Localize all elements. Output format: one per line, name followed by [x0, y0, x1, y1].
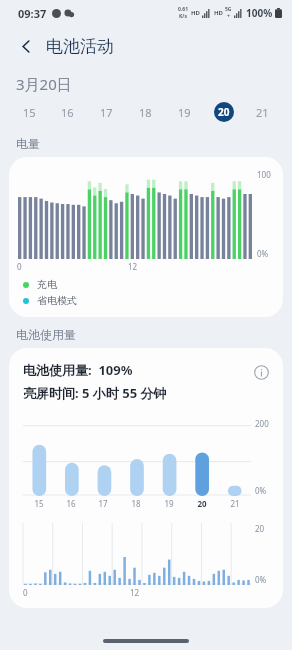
staticText: 17 [100, 105, 113, 120]
staticText: 200 [255, 418, 269, 429]
button[interactable]: 18 [126, 96, 165, 128]
staticText: 20 [218, 105, 230, 119]
staticText: 20 [197, 498, 207, 509]
staticText: 19 [164, 498, 174, 509]
staticText: 电池使用量: 109% [23, 361, 133, 379]
staticText: 0.61 [178, 6, 188, 13]
staticText: 18 [131, 498, 141, 509]
staticText: 3月20日 [16, 74, 72, 94]
staticText: HD [214, 9, 223, 17]
staticText: 0% [257, 248, 269, 259]
staticText: 电池活动 [46, 36, 114, 57]
staticText: 100% [246, 6, 273, 20]
button[interactable]: 19 [165, 96, 204, 128]
button[interactable]: Back [12, 32, 40, 60]
button[interactable]: 20 [204, 96, 243, 128]
staticText: 0% [255, 485, 267, 496]
staticText: 09:37 [18, 6, 47, 21]
staticText: 21 [230, 498, 240, 509]
button[interactable]: Info [249, 360, 273, 384]
staticText: HD [191, 9, 200, 17]
staticText: + [227, 13, 230, 20]
staticText: 12 [128, 261, 138, 272]
staticText: 17 [98, 498, 108, 509]
staticText: 12 [130, 587, 140, 598]
staticText: K/s [179, 13, 187, 20]
staticText: 电池使用量 [16, 327, 76, 342]
staticText: 充电 [37, 278, 57, 291]
staticText: 20 [255, 523, 265, 534]
staticText: 21 [256, 105, 269, 120]
staticText: 15 [34, 498, 44, 509]
staticText: 0 [17, 261, 22, 272]
button[interactable]: 15 [10, 96, 48, 128]
staticText: 0% [255, 574, 267, 585]
button[interactable]: 17 [87, 96, 126, 128]
staticText: 电量 [16, 136, 40, 151]
staticText: 18 [139, 105, 152, 120]
staticText: 16 [61, 105, 74, 120]
staticText: 100 [257, 169, 271, 180]
staticText: 16 [66, 498, 76, 509]
staticText: 15 [23, 105, 36, 120]
staticText: 省电模式 [37, 294, 77, 307]
staticText: 0 [23, 587, 28, 598]
staticText: 19 [178, 105, 191, 120]
button[interactable]: 16 [48, 96, 87, 128]
staticText: 亮屏时间: 5 小时 55 分钟 [23, 384, 167, 402]
staticText: 5G [225, 6, 232, 13]
button[interactable]: 21 [243, 96, 282, 128]
